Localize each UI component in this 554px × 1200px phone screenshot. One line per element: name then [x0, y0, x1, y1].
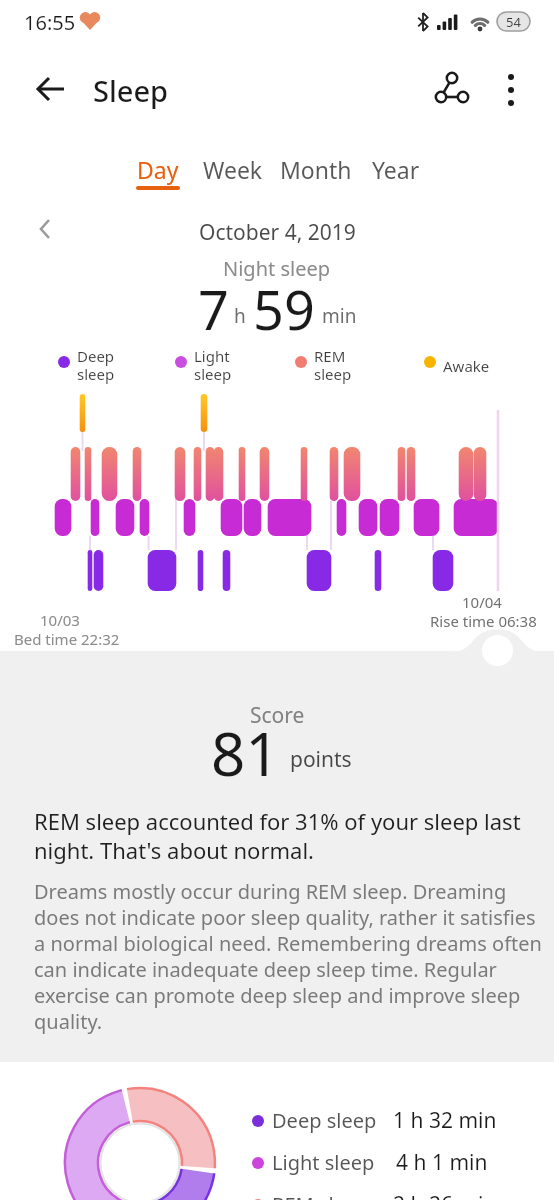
button[interactable] [24, 63, 72, 111]
button[interactable]: Week [196, 146, 270, 192]
staticText: Dreams mostly occur during REM sleep. Dr… [34, 878, 542, 1035]
staticText: Bed time 22:32 [14, 629, 120, 649]
staticText: REM sleep [314, 346, 352, 385]
button[interactable]: Year [364, 146, 428, 192]
staticText: 16:55 [24, 9, 76, 36]
staticText: October 4, 2019 [199, 218, 356, 247]
staticText: points [290, 745, 352, 774]
staticText: Deep sleep [272, 1107, 377, 1134]
button[interactable] [28, 212, 64, 248]
staticText: h [234, 303, 246, 329]
staticText: Year [372, 154, 420, 185]
staticText: Day [137, 154, 179, 185]
staticText: Awake [443, 356, 490, 376]
staticText: 81 [211, 712, 280, 782]
button[interactable] [428, 64, 474, 110]
staticText: 4 h 1 min [396, 1148, 488, 1177]
staticText: Month [280, 154, 352, 185]
staticText: Light sleep [194, 346, 232, 385]
staticText: Rise time 06:38 [430, 611, 537, 631]
staticText: 10/03 [40, 610, 80, 630]
button[interactable]: Day [126, 146, 190, 192]
staticText: Deep sleep [77, 346, 115, 385]
button[interactable]: Month [274, 146, 358, 192]
staticText: 7 [198, 272, 229, 336]
staticText: Score [250, 701, 305, 730]
staticText: 10/04 [462, 592, 502, 612]
staticText: min [322, 303, 357, 329]
staticText: Night sleep [223, 255, 331, 282]
staticText: Week [203, 154, 263, 185]
staticText: REM sleep [272, 1191, 369, 1200]
staticText: 54 [506, 13, 521, 31]
staticText: Sleep [93, 71, 169, 110]
staticText: 2 h 26 min [393, 1190, 497, 1200]
button[interactable] [493, 64, 529, 112]
staticText: REM sleep accounted for 31% of your slee… [34, 806, 521, 865]
staticText: 1 h 32 min [393, 1106, 497, 1135]
staticText: 59 [253, 272, 315, 336]
staticText: Light sleep [272, 1149, 375, 1176]
